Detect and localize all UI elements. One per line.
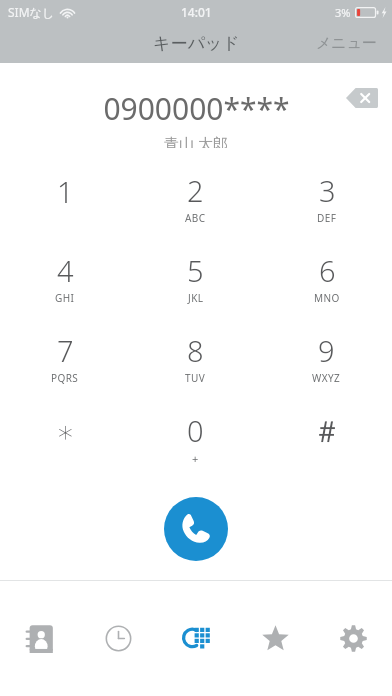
button[interactable]: 設定	[314, 581, 392, 696]
button[interactable]: 9	[261, 318, 392, 398]
button[interactable]: ∗	[0, 398, 130, 478]
button[interactable]: 履歴	[79, 581, 158, 696]
staticText: DEF	[317, 211, 337, 225]
staticText: 0900000****	[103, 88, 290, 129]
staticText: JKL	[188, 291, 204, 305]
staticText: 3%	[335, 5, 351, 20]
staticText: 5	[187, 251, 204, 290]
staticText: 9	[318, 331, 335, 370]
staticText: 6	[319, 251, 336, 290]
staticText: 7	[57, 331, 74, 370]
staticText: GHI	[55, 291, 75, 305]
staticText: 青山 太郎	[164, 133, 228, 148]
button[interactable]: お気に入り	[236, 581, 314, 696]
button[interactable]: 発信	[164, 497, 228, 561]
staticText: +	[192, 451, 199, 466]
staticText: TUV	[185, 371, 206, 385]
button[interactable]: 2	[130, 158, 261, 238]
button[interactable]: 0	[130, 398, 261, 478]
staticText: PQRS	[51, 371, 79, 385]
button[interactable]: 削除	[338, 80, 386, 116]
staticText: ＃	[312, 413, 342, 451]
staticText: ABC	[185, 211, 206, 225]
button[interactable]: 3	[261, 158, 392, 238]
staticText: 8	[187, 331, 204, 370]
staticText: ∗	[56, 414, 75, 449]
button[interactable]: 8	[130, 318, 261, 398]
staticText: 3	[319, 171, 336, 210]
staticText: 1	[57, 172, 74, 211]
staticText: WXYZ	[312, 371, 341, 385]
button[interactable]: 7	[0, 318, 130, 398]
button[interactable]: 6	[261, 238, 392, 318]
staticText: 4	[57, 251, 74, 290]
staticText: メニュー	[316, 34, 378, 53]
staticText: 14:01	[181, 4, 212, 20]
button[interactable]: キーパッド	[158, 581, 236, 696]
staticText: キーパッド	[153, 33, 240, 54]
button[interactable]: ＃	[261, 398, 392, 478]
staticText: SIMなし	[8, 4, 55, 20]
button[interactable]: メニュー	[302, 28, 392, 59]
button[interactable]: 4	[0, 238, 130, 318]
staticText: 0	[187, 411, 204, 450]
button[interactable]: 連絡先	[0, 581, 79, 696]
button[interactable]: 5	[130, 238, 261, 318]
button[interactable]: 1	[0, 158, 130, 238]
staticText: MNO	[314, 291, 340, 305]
staticText: 2	[187, 171, 204, 210]
